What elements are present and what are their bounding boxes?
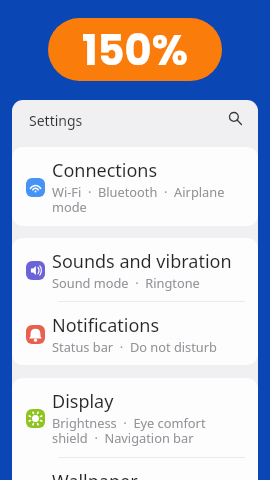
staticText: Brightness · Eye comfort shield · Naviga… [52, 414, 237, 447]
staticText: Wi-Fi · Bluetooth · Airplane mode [52, 183, 237, 216]
staticText: Display [52, 389, 114, 414]
button[interactable]: Connections [12, 147, 258, 226]
staticText: Wallpaper [52, 469, 138, 480]
staticText: Sounds and vibration [52, 249, 232, 274]
staticText: Status bar · Do not disturb [52, 338, 217, 355]
staticText: Settings [29, 111, 83, 130]
staticText: Sound mode · Ringtone [52, 274, 200, 291]
button[interactable]: Notifications [12, 302, 258, 365]
staticText: 150% [82, 21, 188, 79]
button[interactable]: Search [221, 105, 247, 131]
button[interactable]: Sounds and vibration [12, 238, 258, 301]
button[interactable]: 150% [48, 18, 222, 81]
button[interactable]: Wallpaper [12, 458, 258, 480]
staticText: Connections [52, 158, 158, 183]
staticText: Notifications [52, 313, 160, 338]
button[interactable]: Display [12, 378, 258, 457]
